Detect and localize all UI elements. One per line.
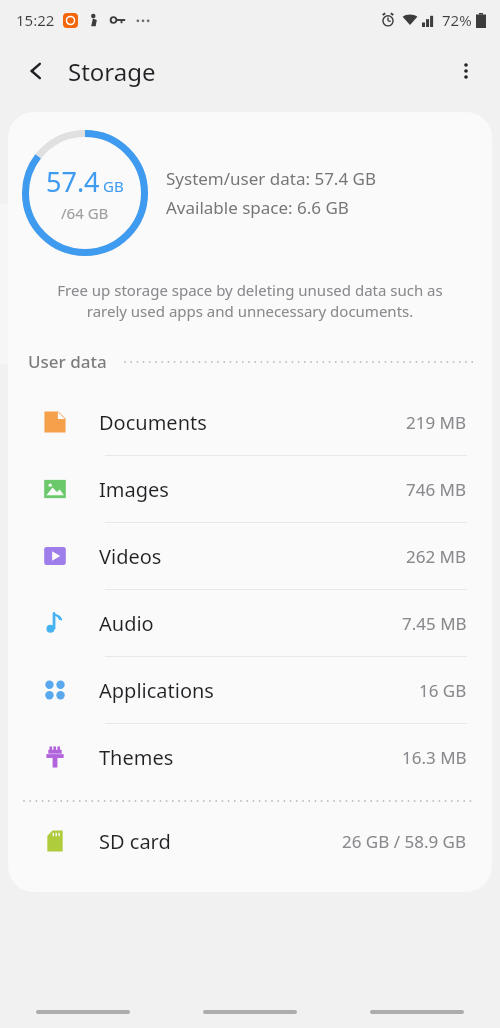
button[interactable]: Audio	[8, 590, 492, 657]
staticText: 219 MB	[406, 411, 467, 434]
staticText: Available space: 6.6 GB	[166, 196, 349, 219]
staticText: 72%	[442, 10, 472, 30]
staticText: 262 MB	[406, 545, 467, 568]
staticText: Themes	[99, 744, 402, 771]
staticText: 16 GB	[419, 679, 467, 702]
staticText: GB	[103, 176, 124, 196]
staticText: 15:22	[16, 10, 55, 30]
button[interactable]: Home	[166, 980, 333, 1028]
button[interactable]: Themes	[8, 724, 492, 790]
staticText: Free up storage space by deleting unused…	[36, 280, 464, 322]
button[interactable]: Recents	[0, 980, 166, 1028]
button[interactable]: Back	[14, 49, 58, 93]
button[interactable]: Back	[333, 980, 500, 1028]
staticText: Images	[99, 476, 406, 503]
button[interactable]: SD card	[8, 808, 492, 874]
staticText: Documents	[99, 409, 406, 436]
staticText: /64 GB	[61, 203, 109, 223]
staticText: 16.3 MB	[402, 746, 467, 769]
staticText: SD card	[99, 828, 342, 855]
staticText: User data	[28, 350, 107, 373]
button[interactable]: More options	[444, 49, 488, 93]
button[interactable]: Documents	[8, 389, 492, 456]
staticText: Applications	[99, 677, 419, 704]
button[interactable]: Videos	[8, 523, 492, 590]
staticText: 746 MB	[406, 478, 467, 501]
staticText: 7.45 MB	[402, 612, 467, 635]
staticText: Audio	[99, 610, 402, 637]
button[interactable]: Applications	[8, 657, 492, 724]
staticText: 57.4	[46, 163, 100, 200]
button[interactable]: Images	[8, 456, 492, 523]
staticText: 26 GB / 58.9 GB	[342, 830, 467, 853]
staticText: System/user data: 57.4 GB	[166, 167, 376, 190]
staticText: Videos	[99, 543, 406, 570]
staticText: Storage	[68, 55, 156, 88]
